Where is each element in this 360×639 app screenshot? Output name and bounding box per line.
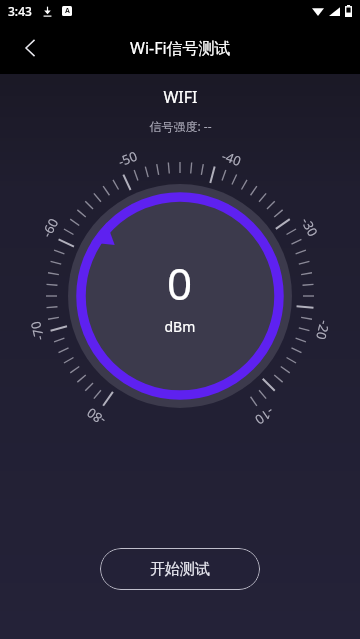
staticText: Wi-Fi信号测试 [130,37,231,59]
staticText: WIFI [163,86,198,108]
button[interactable]: 开始测试 [100,548,260,590]
staticText: A [65,6,70,16]
button[interactable]: Back [10,28,50,68]
staticText: 3:43 [8,3,32,19]
staticText: 开始测试 [150,560,210,579]
staticText: 信号强度: -- [149,118,212,134]
